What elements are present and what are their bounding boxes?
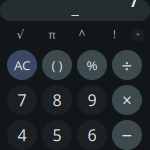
staticText: % bbox=[86, 56, 97, 74]
staticText: × bbox=[122, 88, 132, 111]
button[interactable]: 4 bbox=[7, 120, 37, 150]
staticText: 5 bbox=[52, 124, 61, 146]
button[interactable]: ^ bbox=[70, 23, 94, 45]
staticText: √ bbox=[16, 28, 24, 41]
staticText: ÷ bbox=[121, 53, 132, 77]
button[interactable]: More functions bbox=[131, 28, 144, 41]
button[interactable]: ! bbox=[102, 23, 126, 45]
staticText: ^ bbox=[78, 26, 85, 42]
staticText: ! bbox=[113, 27, 116, 41]
staticText: 7 bbox=[17, 89, 26, 111]
staticText: 8 bbox=[52, 89, 61, 111]
staticText: 6 bbox=[87, 124, 96, 146]
button[interactable]: 7 bbox=[7, 85, 37, 115]
button[interactable]: ÷ bbox=[112, 50, 142, 80]
staticText: π bbox=[48, 27, 55, 42]
staticText: 4 bbox=[17, 124, 26, 146]
staticText: 9 bbox=[87, 89, 96, 111]
staticText: ( ) bbox=[51, 56, 62, 74]
staticText: − bbox=[70, 4, 79, 26]
button[interactable]: √ bbox=[8, 23, 32, 45]
button[interactable]: % bbox=[77, 50, 107, 80]
staticText: AC bbox=[14, 56, 30, 74]
button[interactable]: 6 bbox=[77, 120, 107, 150]
button[interactable]: × bbox=[112, 85, 142, 115]
button[interactable]: 8 bbox=[42, 85, 72, 115]
button[interactable]: 5 bbox=[42, 120, 72, 150]
button[interactable]: − bbox=[112, 120, 142, 150]
button[interactable]: 9 bbox=[77, 85, 107, 115]
staticText: − bbox=[121, 123, 132, 147]
button[interactable]: AC bbox=[7, 50, 37, 80]
button[interactable]: ( ) bbox=[42, 50, 72, 80]
staticText: / bbox=[131, 0, 141, 15]
button[interactable]: π bbox=[40, 23, 64, 45]
